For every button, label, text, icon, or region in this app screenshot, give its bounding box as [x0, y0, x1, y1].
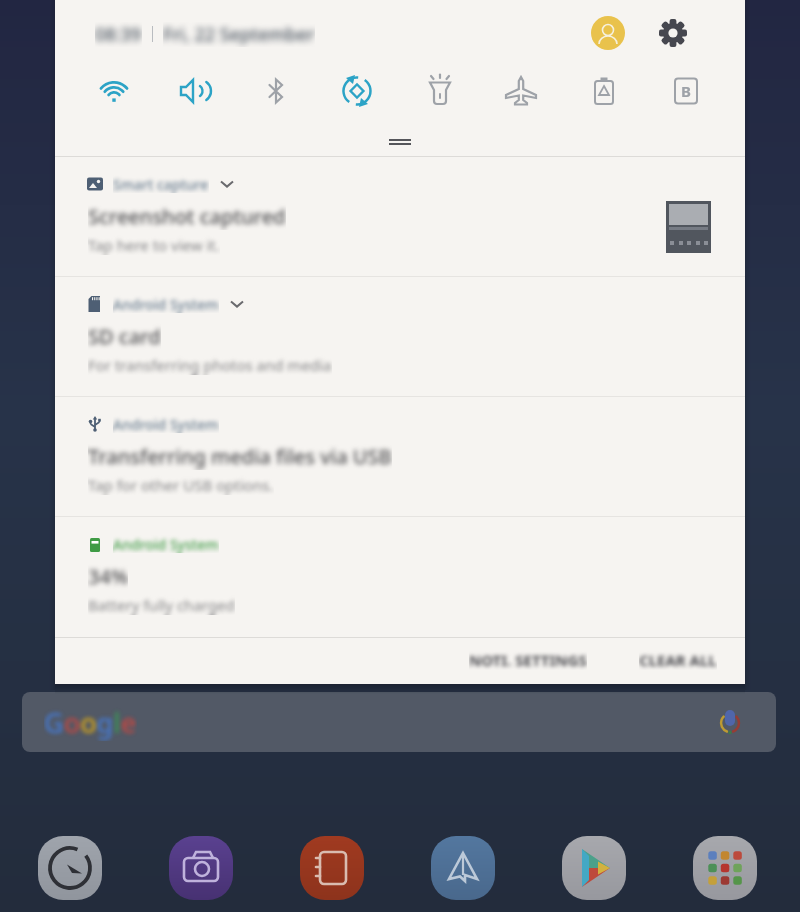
- button[interactable]: Android System: [55, 397, 745, 517]
- button[interactable]: Android System: [55, 517, 745, 637]
- button[interactable]: Android System: [55, 277, 745, 397]
- button[interactable]: [38, 836, 102, 900]
- staticText: 08:39: [95, 22, 142, 47]
- button[interactable]: Google: [22, 692, 776, 752]
- button[interactable]: [173, 70, 215, 112]
- staticText: Transferring media files via USB: [88, 443, 392, 470]
- button[interactable]: [693, 836, 757, 900]
- button[interactable]: [336, 70, 378, 112]
- button[interactable]: B: [665, 70, 707, 112]
- staticText: For transferring photos and media: [88, 355, 332, 375]
- staticText: Battery fully charged: [88, 595, 235, 615]
- staticText: SD card: [88, 323, 161, 350]
- staticText: B: [681, 81, 691, 101]
- staticText: Android System: [113, 415, 219, 433]
- button[interactable]: [583, 70, 625, 112]
- button[interactable]: [657, 17, 689, 49]
- button[interactable]: [431, 836, 495, 900]
- staticText: 34%: [88, 563, 128, 590]
- staticText: Android System: [113, 295, 219, 313]
- staticText: Tap for other USB options.: [88, 475, 274, 495]
- button[interactable]: [500, 70, 542, 112]
- staticText: Smart capture: [113, 175, 209, 193]
- button[interactable]: [255, 70, 297, 112]
- staticText: CLEAR ALL: [639, 650, 717, 670]
- staticText: NOTI. SETTINGS: [469, 650, 587, 670]
- button[interactable]: [562, 836, 626, 900]
- button[interactable]: [93, 70, 135, 112]
- staticText: Google: [44, 704, 137, 741]
- button[interactable]: CLEAR ALL: [620, 640, 735, 680]
- button[interactable]: [419, 70, 461, 112]
- staticText: Fri, 22 September: [163, 22, 315, 47]
- staticText: Android System: [113, 535, 219, 553]
- button[interactable]: [169, 836, 233, 900]
- button[interactable]: [591, 16, 625, 50]
- staticText: Screenshot captured: [88, 203, 286, 230]
- button[interactable]: Smart capture: [55, 157, 745, 277]
- button[interactable]: [300, 836, 364, 900]
- button[interactable]: NOTI. SETTINGS: [435, 640, 620, 680]
- staticText: Tap here to view it.: [88, 235, 220, 255]
